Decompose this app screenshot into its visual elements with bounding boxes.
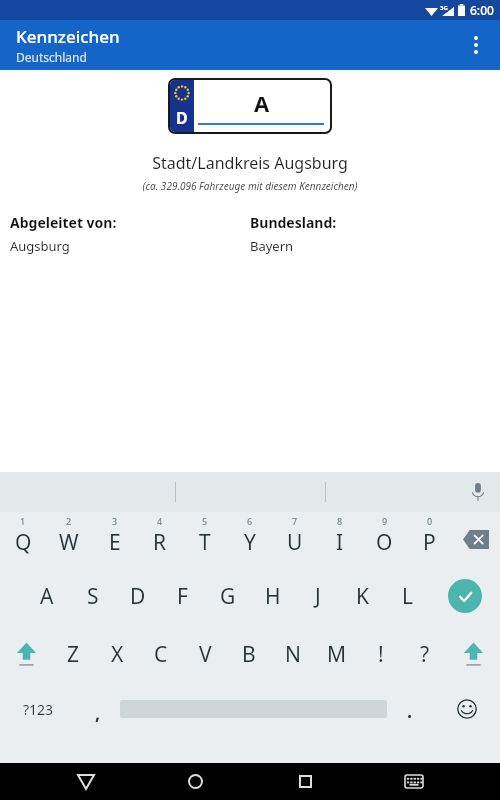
- button[interactable]: Enter: [430, 567, 500, 625]
- staticText: ?123: [23, 700, 54, 719]
- button[interactable]: R: [137, 512, 182, 567]
- button[interactable]: N: [271, 625, 315, 683]
- button[interactable]: Space: [120, 683, 387, 735]
- staticText: 9: [382, 515, 388, 527]
- staticText: 3G: [440, 4, 448, 12]
- staticText: E: [109, 528, 121, 557]
- staticText: G: [220, 582, 236, 611]
- button[interactable]: Emoji: [433, 683, 500, 735]
- staticText: Deutschland: [16, 49, 87, 65]
- staticText: 6: [247, 515, 253, 527]
- staticText: W: [59, 528, 79, 557]
- staticText: H: [265, 582, 281, 611]
- button[interactable]: C: [139, 625, 183, 683]
- button[interactable]: J: [295, 567, 340, 625]
- staticText: 4: [157, 515, 163, 527]
- button[interactable]: L: [385, 567, 430, 625]
- button[interactable]: Z: [52, 625, 95, 683]
- button[interactable]: E: [92, 512, 137, 567]
- staticText: Z: [67, 640, 80, 669]
- button[interactable]: .: [387, 683, 433, 735]
- button[interactable]: Backspace: [452, 512, 500, 567]
- button[interactable]: Back: [62, 763, 110, 800]
- staticText: L: [402, 582, 414, 611]
- staticText: 0: [427, 515, 433, 527]
- staticText: B: [242, 640, 256, 669]
- button[interactable]: O: [362, 512, 407, 567]
- staticText: Bayern: [250, 237, 294, 255]
- staticText: .: [407, 699, 413, 724]
- button[interactable]: Home: [171, 763, 219, 800]
- button[interactable]: F: [160, 567, 205, 625]
- staticText: 3: [112, 515, 118, 527]
- staticText: R: [153, 528, 167, 557]
- button[interactable]: I: [317, 512, 362, 567]
- staticText: I: [336, 528, 344, 557]
- staticText: ?: [420, 640, 430, 669]
- button[interactable]: M: [315, 625, 359, 683]
- button[interactable]: More options: [452, 21, 500, 69]
- staticText: P: [423, 528, 436, 557]
- button[interactable]: Switch keyboard: [390, 763, 438, 800]
- staticText: Bundesland:: [250, 213, 337, 232]
- button[interactable]: G: [205, 567, 250, 625]
- staticText: A: [254, 88, 270, 118]
- staticText: O: [376, 528, 393, 557]
- button[interactable]: U: [272, 512, 317, 567]
- staticText: U: [287, 528, 303, 557]
- staticText: Abgeleitet von:: [10, 213, 117, 232]
- button[interactable]: Q: [0, 512, 46, 567]
- button[interactable]: K: [340, 567, 385, 625]
- staticText: !: [378, 640, 384, 669]
- staticText: X: [111, 640, 124, 669]
- staticText: C: [154, 640, 168, 669]
- staticText: F: [177, 582, 188, 611]
- staticText: (ca. 329.096 Fahrzeuge mit diesem Kennze…: [0, 179, 500, 193]
- staticText: 2: [66, 515, 72, 527]
- staticText: Y: [244, 528, 256, 557]
- staticText: V: [199, 640, 212, 669]
- staticText: ,: [95, 701, 101, 726]
- button[interactable]: Shift: [0, 625, 52, 683]
- button[interactable]: Y: [227, 512, 272, 567]
- button[interactable]: S: [70, 567, 115, 625]
- button[interactable]: ?: [403, 625, 447, 683]
- staticText: K: [356, 582, 369, 611]
- button[interactable]: Recent apps: [281, 763, 329, 800]
- staticText: D: [176, 107, 188, 129]
- staticText: S: [87, 582, 99, 611]
- button[interactable]: A: [24, 567, 70, 625]
- staticText: 7: [292, 515, 298, 527]
- button[interactable]: ,: [76, 683, 120, 735]
- staticText: A: [40, 582, 54, 611]
- button[interactable]: D: [115, 567, 160, 625]
- button[interactable]: ?123: [0, 683, 76, 735]
- button[interactable]: Shift: [447, 625, 500, 683]
- staticText: 5: [202, 515, 208, 527]
- button[interactable]: W: [46, 512, 92, 567]
- staticText: N: [285, 640, 301, 669]
- button[interactable]: D: [170, 80, 330, 132]
- staticText: 8: [337, 515, 343, 527]
- staticText: 1: [20, 515, 26, 527]
- button[interactable]: H: [250, 567, 295, 625]
- button[interactable]: V: [183, 625, 227, 683]
- staticText: Augsburg: [10, 237, 70, 255]
- button[interactable]: X: [95, 625, 139, 683]
- button[interactable]: Voice input: [456, 472, 500, 512]
- staticText: D: [130, 582, 146, 611]
- staticText: T: [199, 528, 211, 557]
- staticText: J: [315, 582, 321, 611]
- button[interactable]: P: [407, 512, 452, 567]
- button[interactable]: B: [227, 625, 271, 683]
- staticText: 6:00: [470, 2, 494, 18]
- staticText: M: [327, 640, 347, 669]
- staticText: Q: [15, 528, 32, 557]
- staticText: Kennzeichen: [16, 25, 120, 48]
- button[interactable]: T: [182, 512, 227, 567]
- staticText: Stadt/Landkreis Augsburg: [0, 152, 500, 174]
- button[interactable]: !: [359, 625, 403, 683]
